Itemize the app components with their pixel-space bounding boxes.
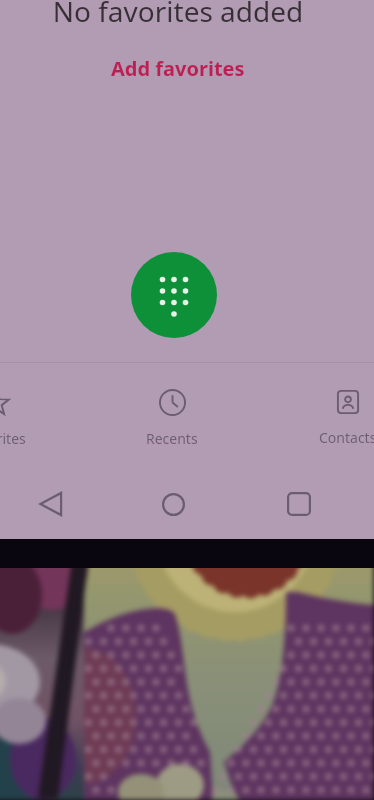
staticText: Recents: [146, 429, 198, 448]
button[interactable]: Contacts: [289, 383, 374, 447]
staticText: Contacts: [319, 428, 374, 447]
button[interactable]: Add favorites: [99, 52, 257, 85]
button[interactable]: Recents: [113, 383, 231, 448]
button[interactable]: Favorites: [0, 383, 55, 448]
button[interactable]: Recent apps: [268, 478, 330, 530]
staticText: No favorites added: [0, 0, 365, 30]
button[interactable]: Back: [20, 478, 82, 530]
staticText: Add favorites: [111, 55, 245, 82]
button[interactable]: Dialpad: [131, 252, 217, 338]
staticText: Favorites: [0, 429, 26, 448]
button[interactable]: Home: [142, 478, 204, 530]
